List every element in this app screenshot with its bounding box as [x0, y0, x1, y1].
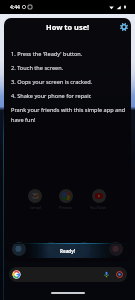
staticText: 2. Touch the screen. [11, 64, 64, 72]
button[interactable]: YouTube [90, 189, 107, 210]
button[interactable]: Ready! [4, 243, 131, 258]
staticText: How to use! [46, 22, 90, 32]
staticText: 4. Shake your phone for repair. [11, 92, 92, 100]
button[interactable]: Messages [44, 242, 58, 256]
button[interactable]: Phone [12, 242, 26, 256]
button[interactable]: Settings [116, 19, 131, 34]
button[interactable]: Play Store [109, 242, 123, 256]
staticText: Gmail [30, 205, 41, 210]
staticText: 3. Oops your screen is cracked. [11, 78, 93, 86]
staticText: 4:44 [10, 4, 20, 11]
button[interactable]: Photos [59, 189, 73, 210]
button[interactable]: Search [9, 267, 127, 282]
staticText: Ready! [60, 248, 76, 254]
staticText: YouTube [90, 205, 107, 210]
staticText: Photos [59, 205, 73, 210]
button[interactable]: Chrome [77, 242, 91, 256]
button[interactable]: Gmail [28, 189, 42, 210]
staticText: Prank your friends with this simple app … [11, 106, 128, 123]
staticText: 1. Press the 'Ready' button. [11, 50, 83, 58]
